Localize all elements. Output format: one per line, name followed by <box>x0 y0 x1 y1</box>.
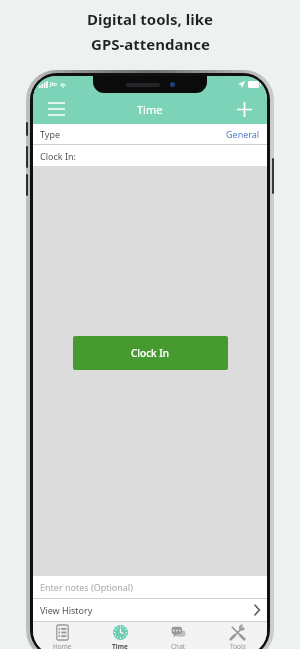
staticText: Home <box>53 642 72 649</box>
staticText: Jio <box>50 80 57 88</box>
button[interactable]: Time <box>91 622 149 649</box>
staticText: Enter notes (Optional) <box>40 581 133 593</box>
button[interactable]: Menu <box>41 94 71 124</box>
button[interactable]: Enter notes (Optional) <box>33 576 267 598</box>
staticText: Tools <box>230 642 246 649</box>
button[interactable]: Tools <box>208 622 267 649</box>
staticText: Time <box>112 642 128 649</box>
staticText: View History <box>40 604 93 616</box>
staticText: Chat <box>171 642 186 649</box>
button[interactable]: Type <box>33 124 267 144</box>
staticText: Time <box>137 102 163 117</box>
button[interactable]: Clock In <box>73 336 228 370</box>
staticText: Digital tools, like <box>87 9 213 29</box>
staticText: GPS-attendance <box>91 34 210 54</box>
staticText: General <box>226 128 260 140</box>
staticText: Type <box>40 128 61 140</box>
staticText: Clock In <box>131 346 170 360</box>
button[interactable]: Chat <box>149 622 208 649</box>
button[interactable]: Home <box>33 622 91 649</box>
button[interactable]: View History <box>33 599 267 621</box>
button[interactable]: Add <box>229 94 259 124</box>
staticText: Clock In: <box>40 150 76 162</box>
